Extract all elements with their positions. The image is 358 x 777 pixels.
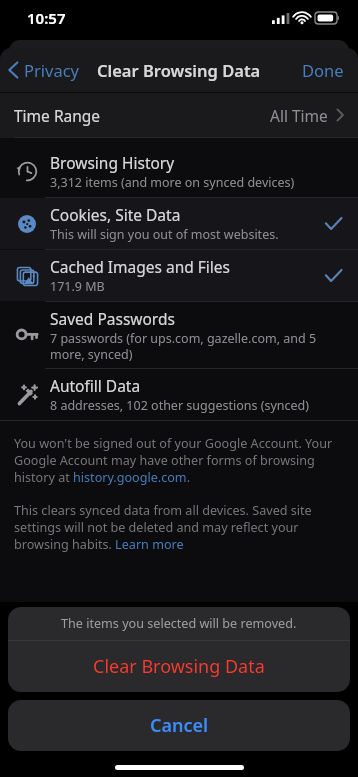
button[interactable]: Cookies, Site Data — [0, 198, 358, 249]
other: Home indicator — [115, 765, 244, 770]
staticText: Browsing History — [50, 152, 175, 173]
staticText: 3,312 items (and more on synced devices) — [50, 174, 295, 191]
staticText: 8 addresses, 102 other suggestions (sync… — [50, 397, 310, 414]
staticText: This will sign you out of most websites. — [50, 226, 279, 243]
button[interactable]: Done — [288, 53, 358, 87]
button[interactable]: Cached Images and Files — [0, 250, 358, 301]
staticText: 171.9 MB — [50, 278, 105, 295]
staticText: Time Range — [14, 105, 101, 126]
staticText: Saved Passwords — [50, 308, 175, 329]
button[interactable]: Browsing History — [0, 146, 358, 197]
staticText: 7 passwords (for ups.com, gazelle.com, a… — [50, 330, 342, 362]
button[interactable]: Autofill Data — [0, 369, 358, 420]
staticText: This clears synced data from all devices… — [14, 502, 344, 553]
staticText: Cached Images and Files — [50, 256, 231, 277]
staticText: The items you selected will be removed. — [61, 615, 297, 632]
staticText: You won't be signed out of your Google A… — [14, 435, 344, 486]
staticText: Cookies, Site Data — [50, 204, 181, 225]
button[interactable]: Clear Browsing Data — [8, 641, 350, 692]
staticText: 10:57 — [27, 8, 66, 28]
button[interactable]: Time Range — [0, 93, 358, 137]
staticText: Autofill Data — [50, 375, 141, 396]
staticText: Clear Browsing Data — [93, 654, 265, 679]
staticText: Cancel — [150, 713, 209, 738]
staticText: Done — [302, 59, 344, 81]
button[interactable]: Saved Passwords — [0, 302, 358, 368]
staticText: Privacy — [24, 59, 80, 81]
button[interactable]: Cancel — [8, 700, 350, 751]
button[interactable]: Privacy — [0, 53, 88, 87]
staticText: All Time — [270, 105, 328, 126]
staticText: Clear Browsing Data — [97, 59, 261, 81]
